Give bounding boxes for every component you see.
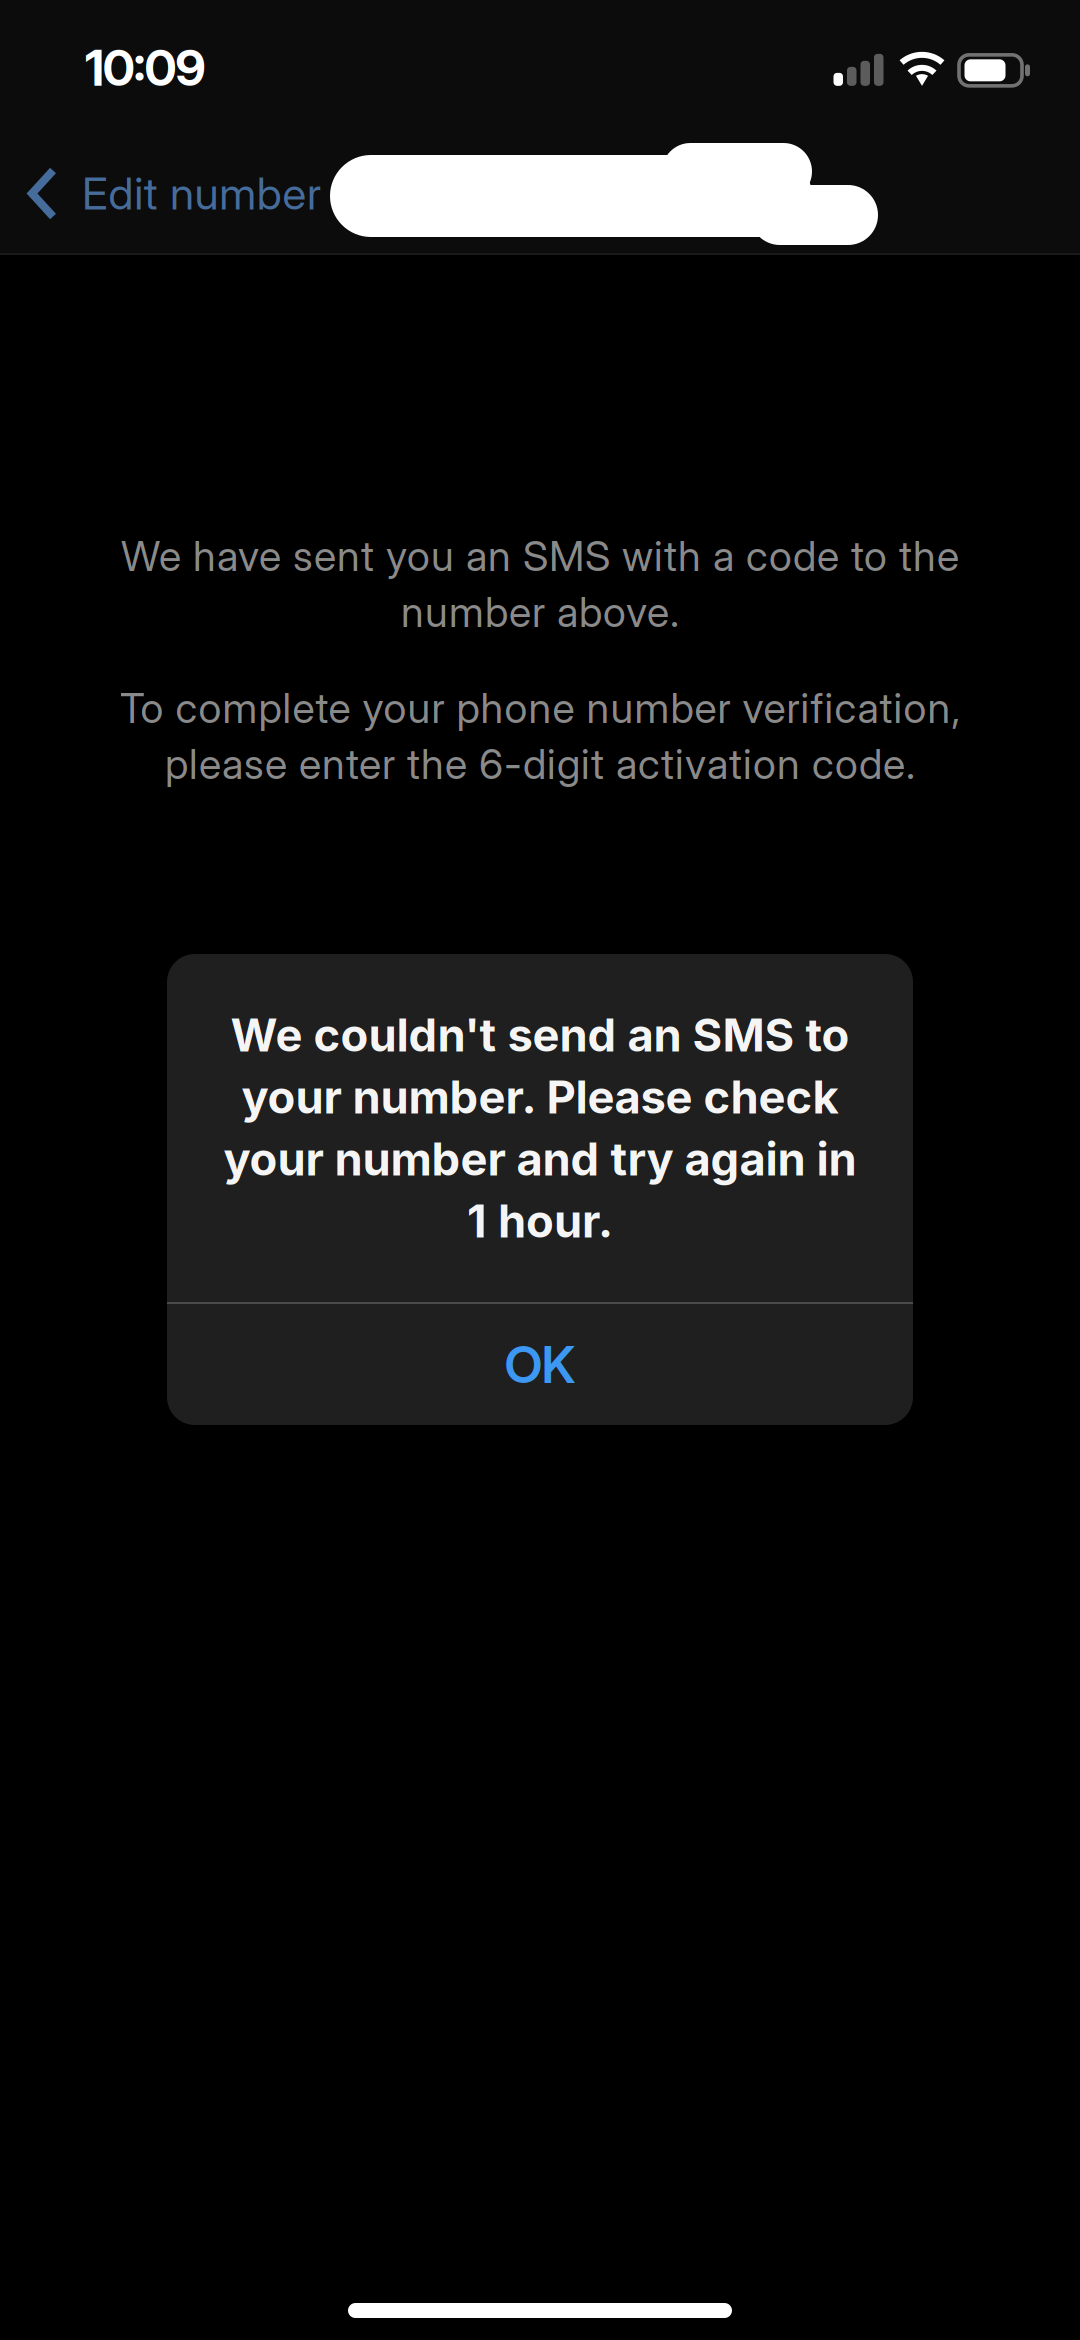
staticText: OK — [504, 1334, 575, 1395]
staticText: We couldn't send an SMS to — [230, 1008, 849, 1062]
staticText: We have sent you an SMS with a code to t… — [121, 531, 959, 581]
button[interactable]: Edit number — [0, 124, 360, 255]
staticText: To complete your phone number verificati… — [119, 683, 960, 733]
staticText: 10:09 — [85, 38, 205, 98]
staticText: please enter the 6-digit activation code… — [165, 739, 915, 789]
staticText: your number and try again in — [223, 1132, 856, 1186]
staticText: your number. Please check — [241, 1070, 838, 1124]
staticText: 1 hour. — [467, 1194, 613, 1248]
staticText: Edit number — [82, 167, 321, 220]
button[interactable]: OK — [167, 1304, 913, 1425]
staticText: number above. — [401, 587, 679, 637]
